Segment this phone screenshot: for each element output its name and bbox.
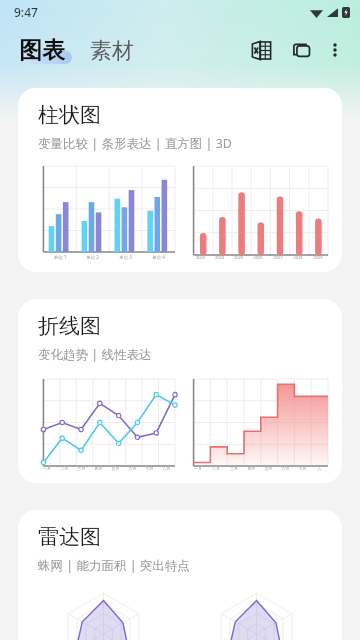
staticText: 2023 (191, 255, 210, 260)
staticText: 八月 (158, 466, 175, 471)
staticText: 二月 (56, 466, 73, 471)
staticText: 一月 (38, 466, 56, 471)
button[interactable]: 柱状图 (18, 88, 342, 272)
button[interactable]: More options (320, 35, 350, 65)
staticText: 2024 (210, 255, 229, 260)
staticText: 二月 (207, 466, 225, 471)
staticText: 六月 (277, 466, 294, 471)
staticText: 9:47 (14, 4, 38, 20)
staticText: 七月 (294, 466, 311, 471)
staticText: 2029 (308, 255, 328, 260)
staticText: 六月 (124, 466, 141, 471)
staticText: 雷达图 (38, 524, 101, 550)
staticText: 2028 (288, 255, 308, 260)
button[interactable]: Export to Excel (244, 33, 278, 67)
button[interactable]: 图表 (16, 36, 68, 65)
staticText: 单位 4 (142, 254, 175, 260)
staticText: 2027 (268, 255, 288, 260)
staticText: 一月 (189, 466, 207, 471)
staticText: 变化趋势 | 线性表达 (38, 346, 152, 363)
staticText: 素材 (90, 37, 134, 65)
staticText: 单位 2 (76, 254, 109, 260)
staticText: 2026 (248, 255, 268, 260)
staticText: 八 (311, 466, 328, 471)
staticText: 三月 (73, 466, 90, 471)
staticText: 四月 (90, 466, 107, 471)
staticText: 2025 (229, 255, 248, 260)
button[interactable]: 雷达图 (18, 510, 342, 640)
staticText: 四月 (243, 466, 260, 471)
staticText: 图表 (19, 36, 65, 65)
staticText: 单位 1 (44, 254, 76, 260)
staticText: 变量比较 | 条形表达 | 直方图 | 3D (38, 135, 232, 152)
staticText: 单位 3 (109, 254, 142, 260)
staticText: 折线图 (38, 313, 101, 339)
button[interactable]: Templates (284, 33, 318, 67)
staticText: 七月 (141, 466, 158, 471)
staticText: 柱状图 (38, 102, 101, 128)
staticText: 五月 (107, 466, 124, 471)
button[interactable]: 折线图 (18, 299, 342, 483)
staticText: 三月 (225, 466, 243, 471)
staticText: 五月 (260, 466, 277, 471)
staticText: 蛛网 | 能力面积 | 突出特点 (38, 557, 190, 574)
button[interactable]: 素材 (90, 37, 134, 65)
